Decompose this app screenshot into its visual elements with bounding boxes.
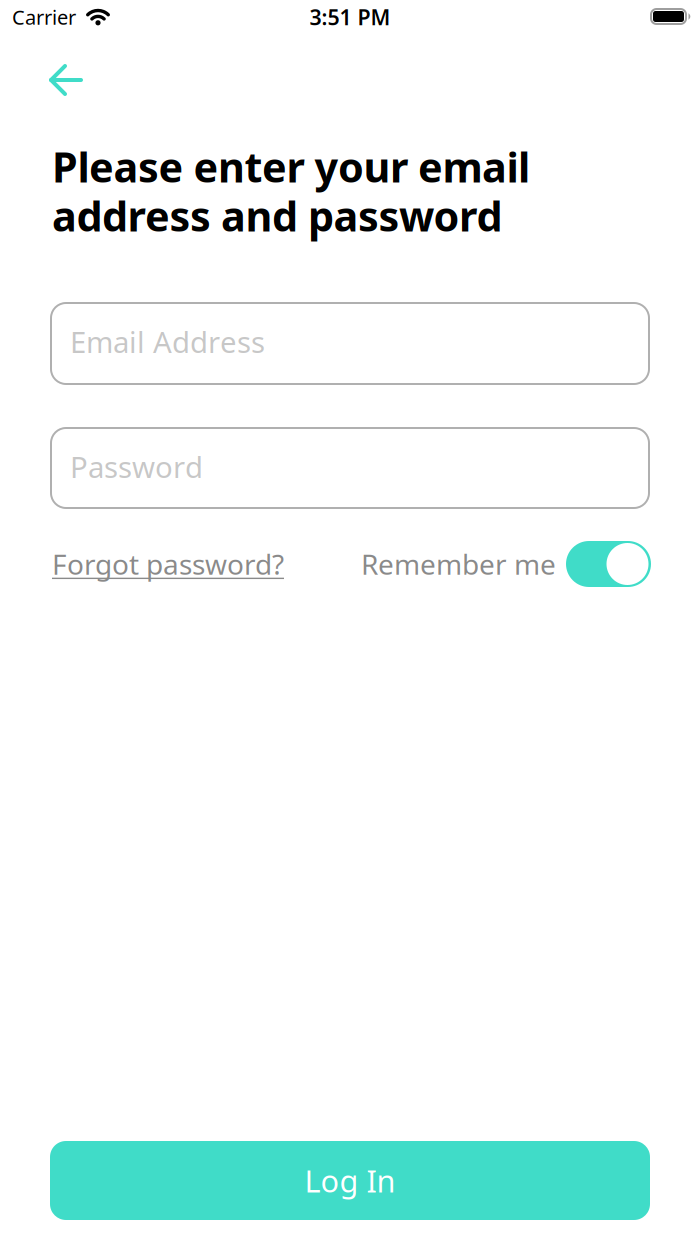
button[interactable]: Password: [50, 427, 650, 509]
staticText: Email Address: [70, 322, 265, 361]
staticText: Please enter your email address and pass…: [52, 139, 530, 243]
staticText: Log In: [304, 1160, 395, 1201]
staticText: Password: [70, 447, 203, 486]
button[interactable]: Forgot password?: [52, 545, 372, 583]
staticText: 3:51 PM: [309, 3, 390, 31]
button[interactable]: Log In: [50, 1141, 650, 1220]
staticText: Forgot password?: [52, 545, 284, 583]
staticText: Remember me: [361, 545, 556, 583]
button[interactable]: Remember me: [566, 541, 651, 587]
button[interactable]: Email Address: [50, 302, 650, 385]
button[interactable]: Back: [49, 65, 83, 95]
staticText: Carrier: [12, 4, 76, 30]
